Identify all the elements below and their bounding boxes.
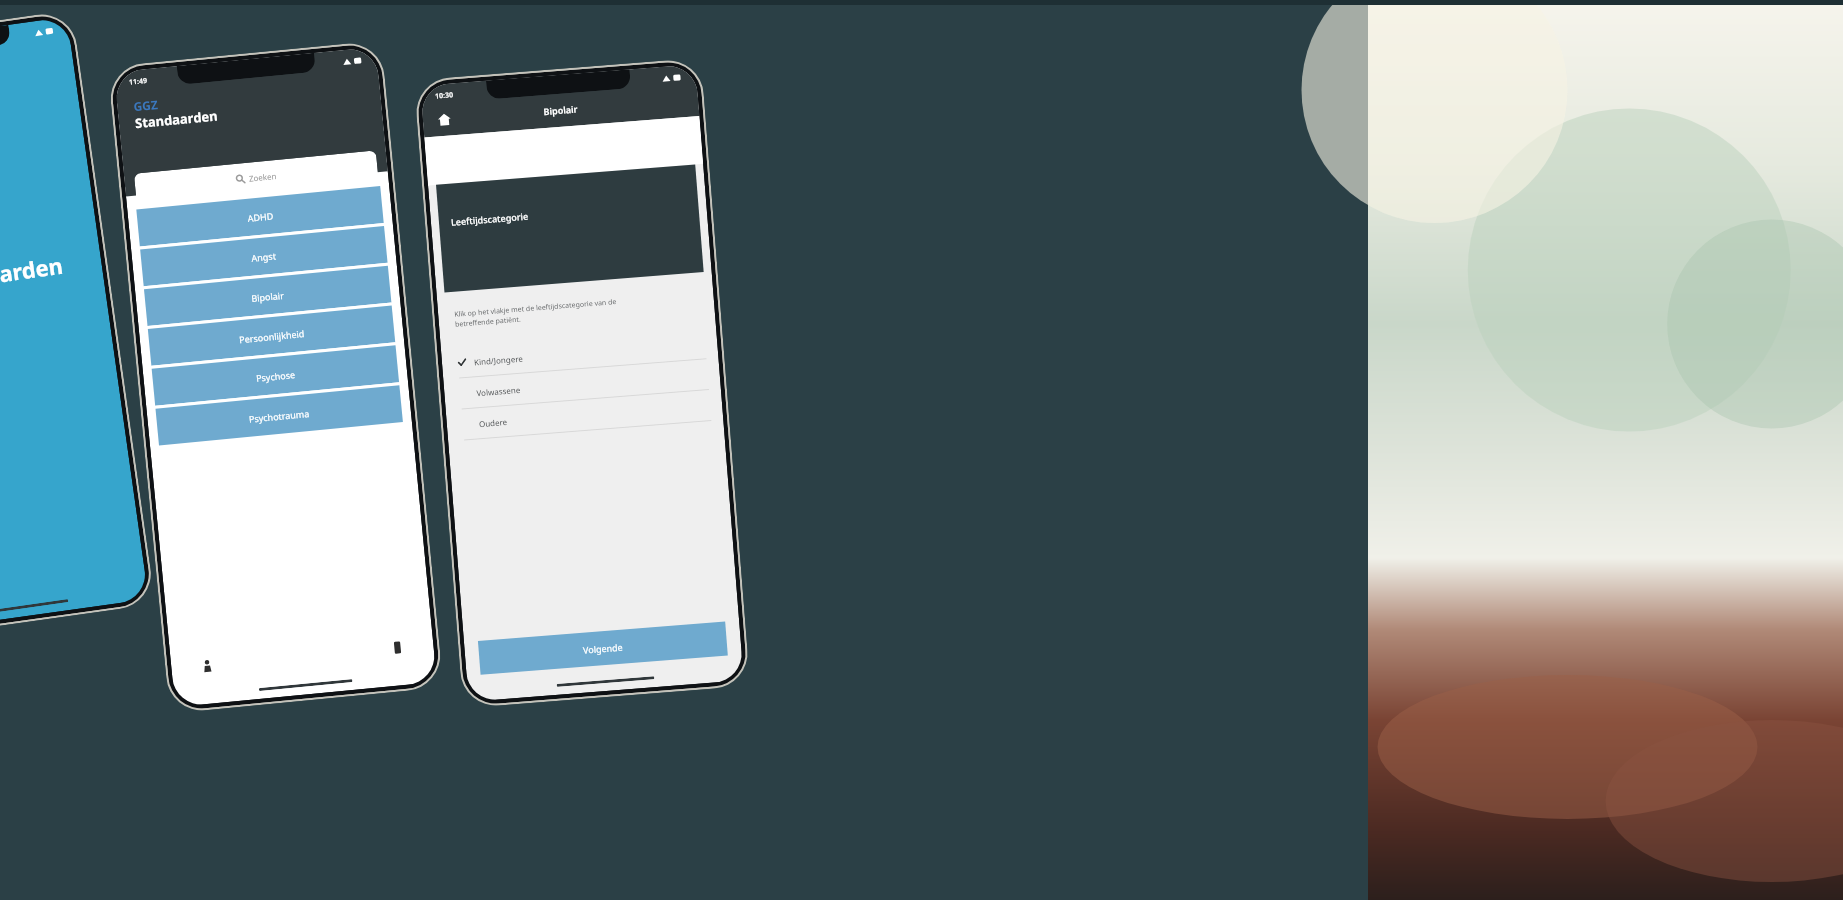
button[interactable]: Documenten — [384, 634, 411, 661]
button[interactable]: Profiel — [194, 653, 220, 679]
staticText: Klik op het vlakje met de leeftijdscateg… — [454, 297, 618, 330]
staticText: 11:49 — [129, 76, 147, 88]
staticText: Zorgstandaarden — [0, 250, 65, 306]
button[interactable]: Oudere — [446, 389, 723, 442]
staticText: 10:30 — [435, 90, 453, 102]
staticText: Oudere — [478, 416, 508, 429]
button[interactable]: Volgende — [478, 621, 728, 675]
button[interactable]: Psychotrauma — [155, 385, 403, 445]
button[interactable]: Home — [434, 109, 454, 129]
button[interactable]: Volwassene — [443, 358, 721, 411]
button[interactable]: Kind/Jongere — [441, 327, 718, 380]
button[interactable]: Bipolair — [144, 266, 391, 326]
staticText: Volwassene — [476, 384, 521, 398]
staticText: Leeftijdscategorie — [450, 210, 529, 228]
button[interactable]: Psychose — [152, 345, 399, 406]
staticText: Zoeken — [248, 170, 277, 184]
staticText: Bipolair — [251, 289, 285, 304]
button[interactable]: Angst — [140, 226, 387, 286]
staticText: Bipolair — [543, 102, 578, 117]
staticText: Psychotrauma — [248, 407, 310, 425]
staticText: Psychose — [255, 368, 296, 384]
staticText: Persoonlijkheid — [239, 327, 305, 345]
staticText: Angst — [251, 249, 277, 264]
staticText: GGZ — [133, 96, 159, 114]
button[interactable]: Persoonlijkheid — [148, 305, 395, 366]
staticText: ADHD — [247, 209, 274, 224]
staticText: Standaarden — [134, 106, 218, 132]
staticText: Volgende — [582, 641, 623, 656]
button[interactable]: ADHD — [136, 186, 384, 246]
staticText: Kind/Jongere — [474, 353, 523, 367]
button[interactable]: Zoeken — [134, 150, 379, 203]
